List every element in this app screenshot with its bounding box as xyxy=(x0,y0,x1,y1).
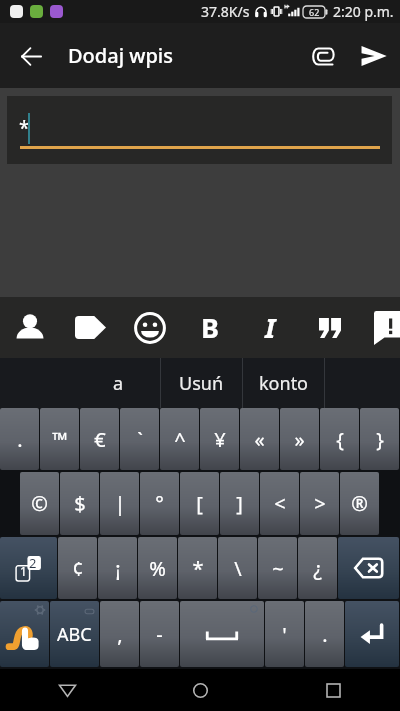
staticText: * xyxy=(192,555,204,582)
button[interactable]: > xyxy=(300,472,339,535)
staticText: % xyxy=(149,555,166,582)
button[interactable]: . xyxy=(0,408,39,470)
staticText: « xyxy=(254,426,265,453)
button[interactable]: < xyxy=(260,472,299,535)
staticText: | xyxy=(114,490,126,517)
staticText: ™ xyxy=(52,426,68,453)
button[interactable]: ] xyxy=(220,472,259,535)
button[interactable]: ¿ xyxy=(298,537,337,599)
staticText: ABC xyxy=(57,622,92,647)
staticText: 62 xyxy=(309,6,320,18)
staticText: . xyxy=(322,621,328,648)
button[interactable]: © xyxy=(20,472,59,535)
staticText: , xyxy=(117,621,123,648)
button[interactable]: Bold xyxy=(180,297,240,358)
button[interactable]: [ xyxy=(180,472,219,535)
staticText: ¿ xyxy=(313,555,322,582)
button[interactable]: ' xyxy=(265,601,304,667)
staticText: { xyxy=(336,426,344,453)
button[interactable]: Recents xyxy=(267,669,400,711)
button[interactable]: Usuń xyxy=(161,358,242,408)
button[interactable]: | xyxy=(100,472,139,535)
button[interactable]: } xyxy=(360,408,399,470)
staticText: B xyxy=(201,309,219,346)
staticText: ] xyxy=(236,490,243,517)
button[interactable]: Mention xyxy=(0,297,60,358)
button[interactable]: ABC xyxy=(50,601,99,667)
button[interactable]: Italic xyxy=(240,297,300,358)
button[interactable]: Swipe xyxy=(0,601,49,667)
staticText: ® xyxy=(351,490,368,517)
button[interactable]: Enter xyxy=(345,601,399,667)
button[interactable]: konto xyxy=(243,358,324,408)
button[interactable]: 12 xyxy=(0,537,57,599)
button[interactable]: « xyxy=(240,408,279,470)
staticText: \ xyxy=(234,555,242,582)
button[interactable]: ® xyxy=(340,472,379,535)
staticText: € xyxy=(94,426,106,453)
button[interactable]: { xyxy=(320,408,359,470)
button[interactable]: Send xyxy=(348,30,400,82)
button[interactable]: Delete xyxy=(338,537,399,599)
staticText: konto xyxy=(259,371,309,396)
staticText: ` xyxy=(137,426,143,453)
button[interactable]: Home xyxy=(134,669,267,711)
button[interactable]: $ xyxy=(60,472,99,535)
button[interactable]: Tag xyxy=(60,297,120,358)
button[interactable]: . xyxy=(305,601,344,667)
staticText: 2:20 p.m. xyxy=(333,2,394,21)
button[interactable]: * xyxy=(178,537,217,599)
staticText: . xyxy=(17,426,23,453)
staticText: < xyxy=(274,490,286,517)
button[interactable]: % xyxy=(138,537,177,599)
button[interactable]: ¥ xyxy=(200,408,239,470)
staticText: ° xyxy=(155,490,164,517)
button[interactable]: - xyxy=(140,601,179,667)
staticText: ' xyxy=(282,621,287,648)
staticText: [ xyxy=(196,490,203,517)
staticText: 1 xyxy=(20,563,27,579)
staticText: > xyxy=(314,490,326,517)
staticText: * xyxy=(19,115,30,141)
button[interactable]: Emoji xyxy=(120,297,180,358)
staticText: ¡ xyxy=(115,555,121,582)
button[interactable]: ` xyxy=(120,408,159,470)
button[interactable]: * xyxy=(7,96,392,164)
button[interactable]: a xyxy=(0,358,160,408)
staticText: Dodaj wpis xyxy=(68,42,173,69)
staticText: } xyxy=(376,426,384,453)
staticText: ^ xyxy=(174,426,186,453)
staticText: Usuń xyxy=(179,371,224,396)
button[interactable]: ™ xyxy=(40,408,79,470)
staticText: $ xyxy=(74,490,86,517)
button[interactable]: Back xyxy=(0,669,134,711)
staticText: 2 xyxy=(29,554,37,572)
staticText: © xyxy=(31,490,48,517)
staticText: ¢ xyxy=(72,555,84,582)
button[interactable]: ^ xyxy=(160,408,199,470)
button[interactable]: ~ xyxy=(258,537,297,599)
button[interactable]: ¡ xyxy=(98,537,137,599)
button[interactable]: ° xyxy=(140,472,179,535)
button[interactable]: , xyxy=(100,601,139,667)
staticText: ¥ xyxy=(214,426,226,453)
button[interactable]: € xyxy=(80,408,119,470)
staticText: a xyxy=(113,371,124,396)
button[interactable]: ¢ xyxy=(58,537,97,599)
button[interactable]: \ xyxy=(218,537,257,599)
staticText: I xyxy=(265,309,276,346)
staticText: 37.8K/s xyxy=(201,2,250,21)
button[interactable]: Space xyxy=(180,601,264,667)
button[interactable]: Back xyxy=(10,35,52,77)
staticText: » xyxy=(294,426,305,453)
staticText: - xyxy=(156,621,163,648)
button[interactable]: Quote xyxy=(300,297,360,358)
button[interactable]: Spoiler xyxy=(360,297,400,358)
staticText: ~ xyxy=(272,555,284,582)
button[interactable]: » xyxy=(280,408,319,470)
button[interactable]: Attach xyxy=(300,32,348,80)
